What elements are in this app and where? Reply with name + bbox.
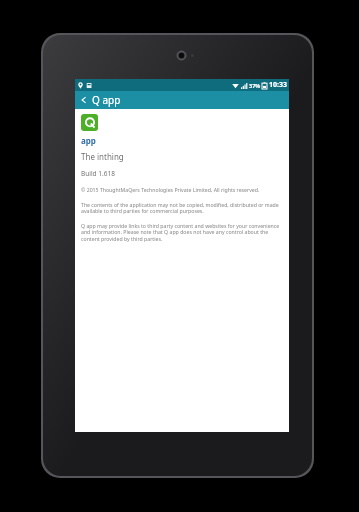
staticText: 37% [249,82,261,89]
button[interactable]: app [81,135,96,146]
staticText: The inthing [81,151,124,162]
staticText: © 2015 ThoughtMaQers Technologies Privat… [81,186,260,193]
button[interactable]: Back [75,91,92,109]
staticText: 10:33 [269,80,287,90]
staticText: Q app may provide links to third party c… [81,222,281,243]
staticText: Build 1.618 [81,169,115,178]
staticText: Q app [92,93,121,107]
staticText: The contents of the application may not … [81,201,281,215]
